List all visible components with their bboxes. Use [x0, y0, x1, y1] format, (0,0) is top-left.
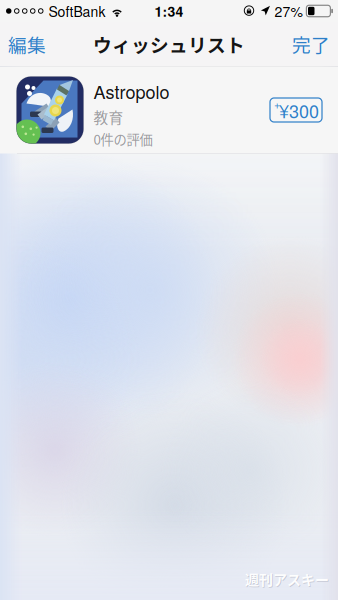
staticText: 週刊アスキー	[245, 569, 329, 589]
staticText: SoftBank	[48, 1, 105, 21]
staticText: ウィッシュリスト	[93, 30, 245, 57]
staticText: 27%	[274, 1, 302, 21]
button[interactable]: +	[270, 98, 322, 122]
button[interactable]: 編集	[0, 22, 54, 66]
staticText: Astropolo	[93, 78, 169, 104]
staticText: +	[274, 96, 280, 112]
staticText: 0件の評価	[93, 129, 152, 149]
button[interactable]: 完了	[284, 22, 338, 66]
staticText: 1:34	[154, 1, 183, 21]
staticText: 教育	[93, 106, 123, 127]
staticText: 完了	[292, 30, 330, 57]
staticText: 編集	[8, 30, 46, 57]
staticText: 週刊アスキー	[246, 569, 330, 590]
staticText: ¥300	[279, 98, 319, 123]
